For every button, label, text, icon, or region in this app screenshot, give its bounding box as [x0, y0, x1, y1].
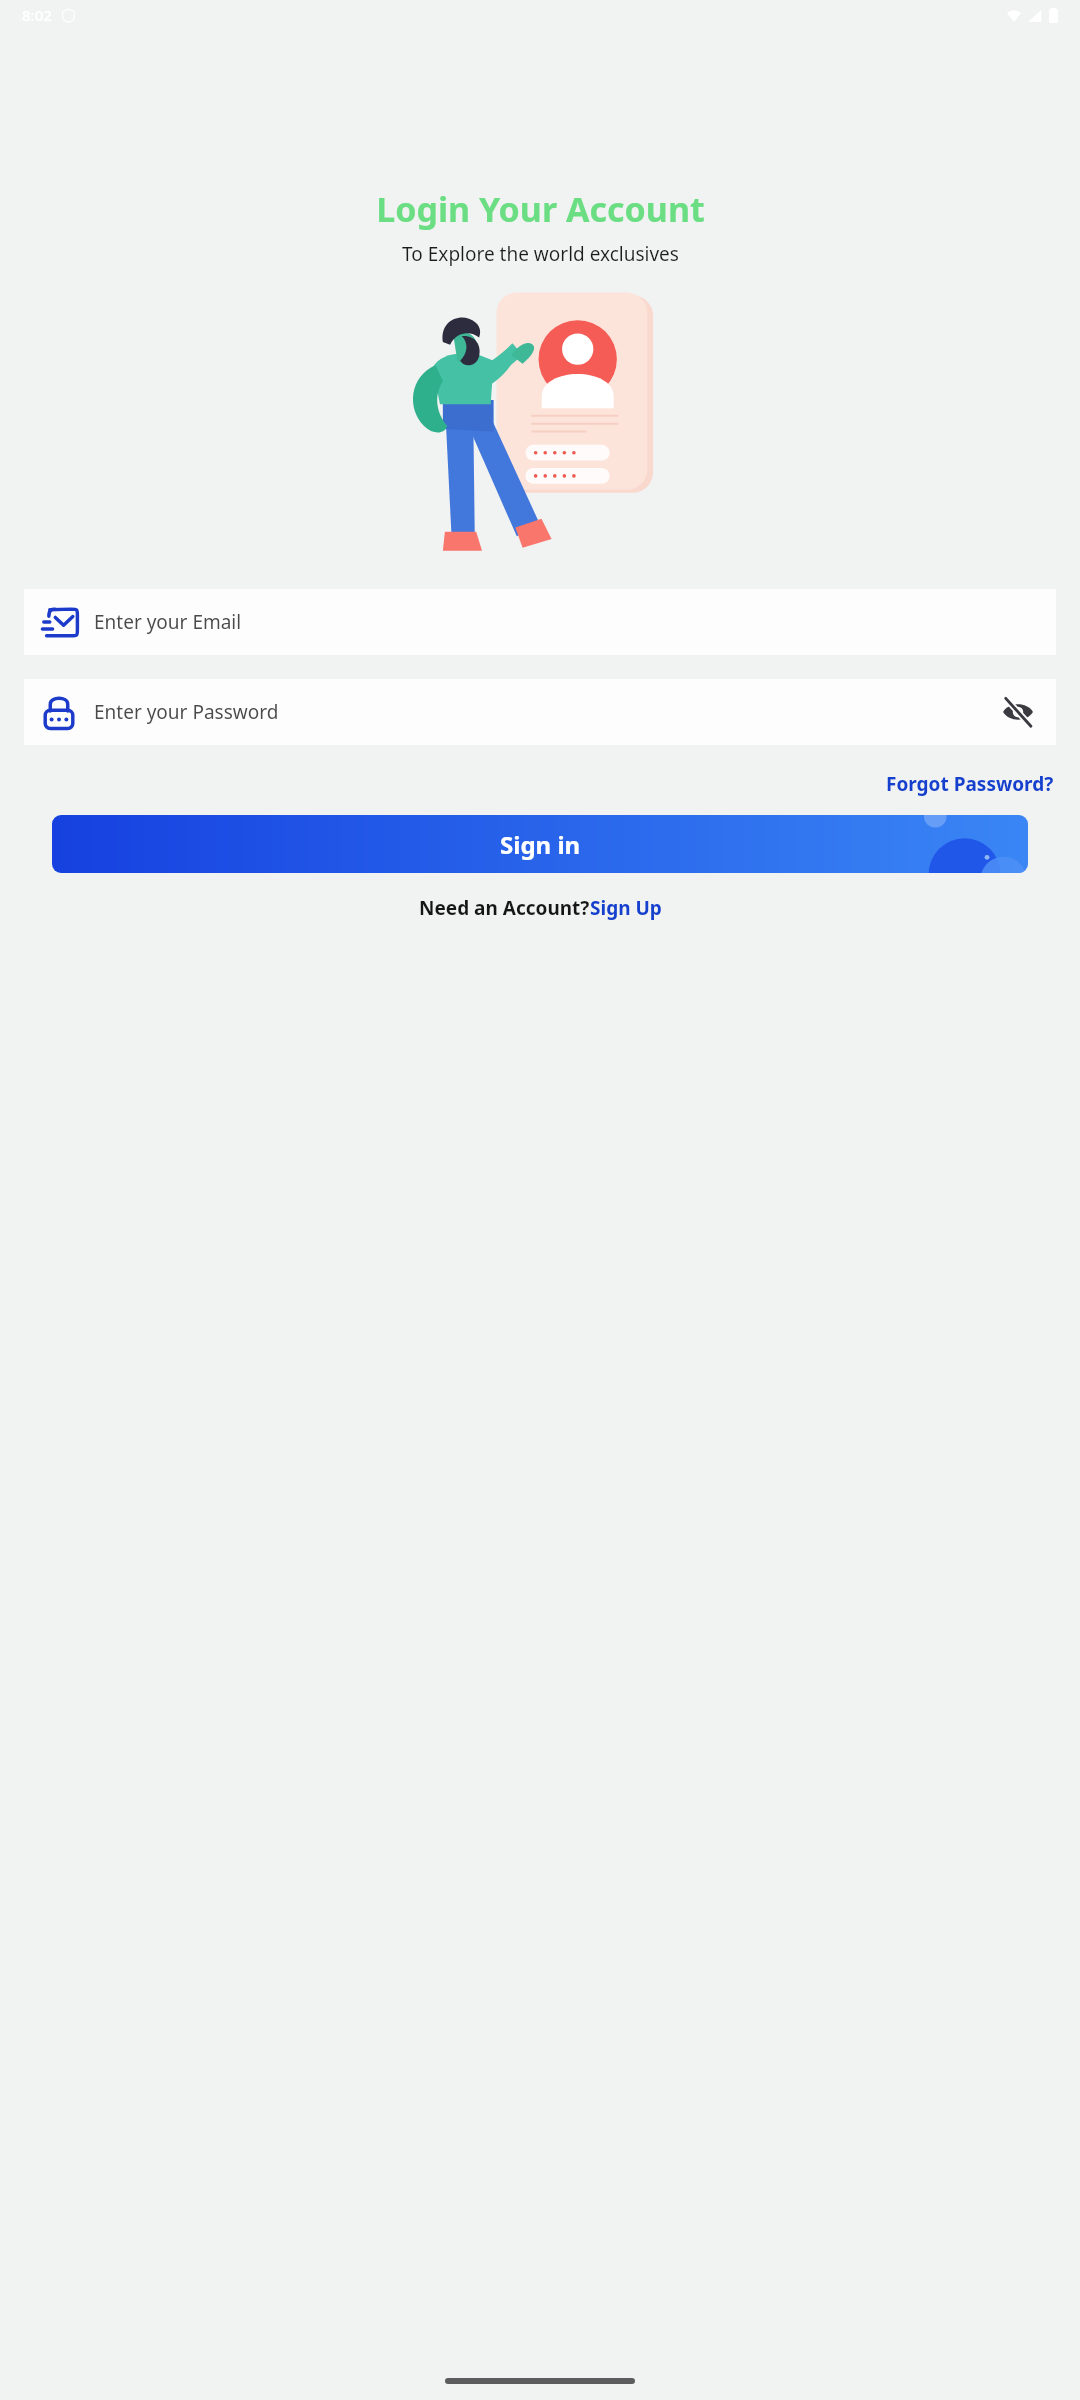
- staticText: Need an Account?: [419, 895, 590, 921]
- staticText: Sign Up: [590, 895, 662, 921]
- button[interactable]: Enter your Email: [24, 589, 1056, 655]
- button[interactable]: Sign in: [52, 815, 1028, 873]
- staticText: Enter your Email: [94, 609, 242, 635]
- staticText: Sign in: [500, 828, 581, 861]
- staticText: To Explore the world exclusives: [402, 241, 679, 267]
- staticText: Enter your Password: [94, 699, 998, 725]
- button[interactable]: Enter your Password: [24, 679, 1056, 745]
- button[interactable]: Show password: [998, 692, 1038, 732]
- button[interactable]: Forgot Password?: [884, 767, 1056, 801]
- staticText: 8:02: [22, 5, 52, 25]
- button[interactable]: Sign Up: [590, 895, 662, 921]
- staticText: Login Your Account: [376, 186, 705, 232]
- staticText: Forgot Password?: [886, 771, 1054, 797]
